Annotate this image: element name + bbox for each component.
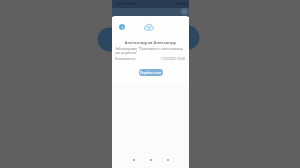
staticText: Пользователь [115, 57, 136, 61]
button[interactable]: Home [142, 155, 159, 165]
staticText: Перейти в чат [140, 71, 162, 75]
button[interactable]: Close [119, 24, 125, 30]
staticText: 17.03.2021 10:30 [161, 57, 185, 61]
staticText: Александров Александр [112, 39, 189, 45]
button[interactable]: Перейти в чат [139, 69, 163, 76]
staticText: Заблокирован "Посмотрите с меня помощь к… [115, 47, 186, 55]
button[interactable]: Recents [159, 155, 176, 165]
button[interactable]: Back [125, 155, 142, 165]
